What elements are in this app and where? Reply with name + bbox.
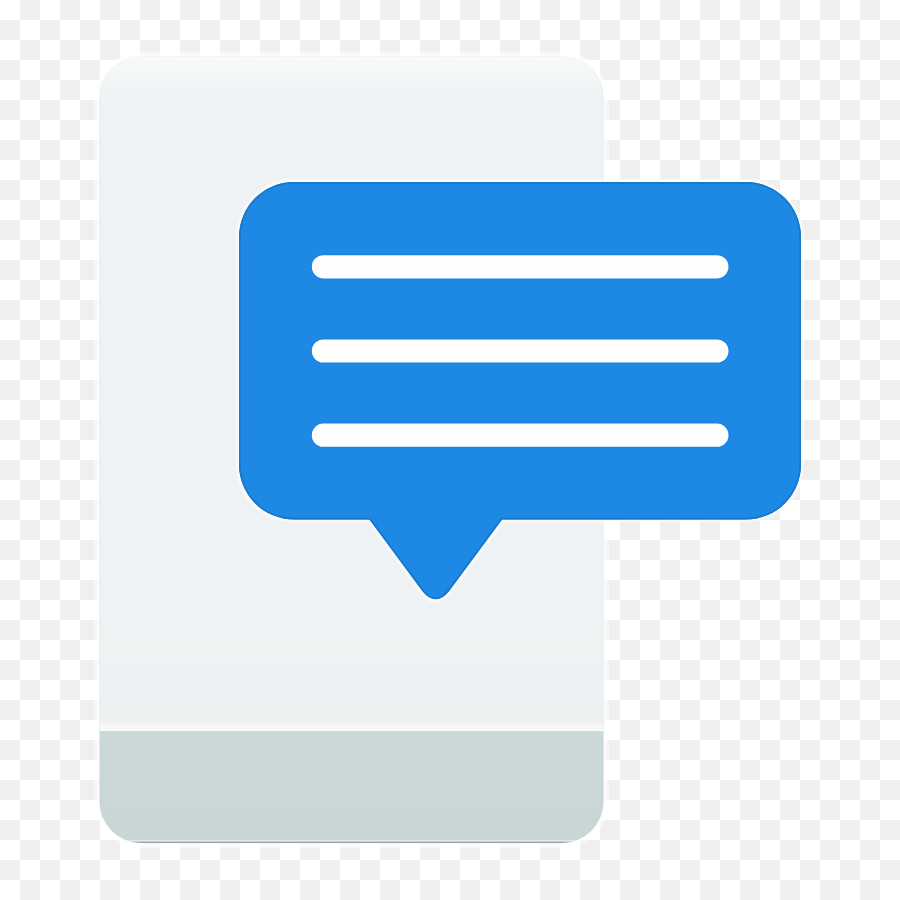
button[interactable]: Messages illustration xyxy=(0,0,900,900)
